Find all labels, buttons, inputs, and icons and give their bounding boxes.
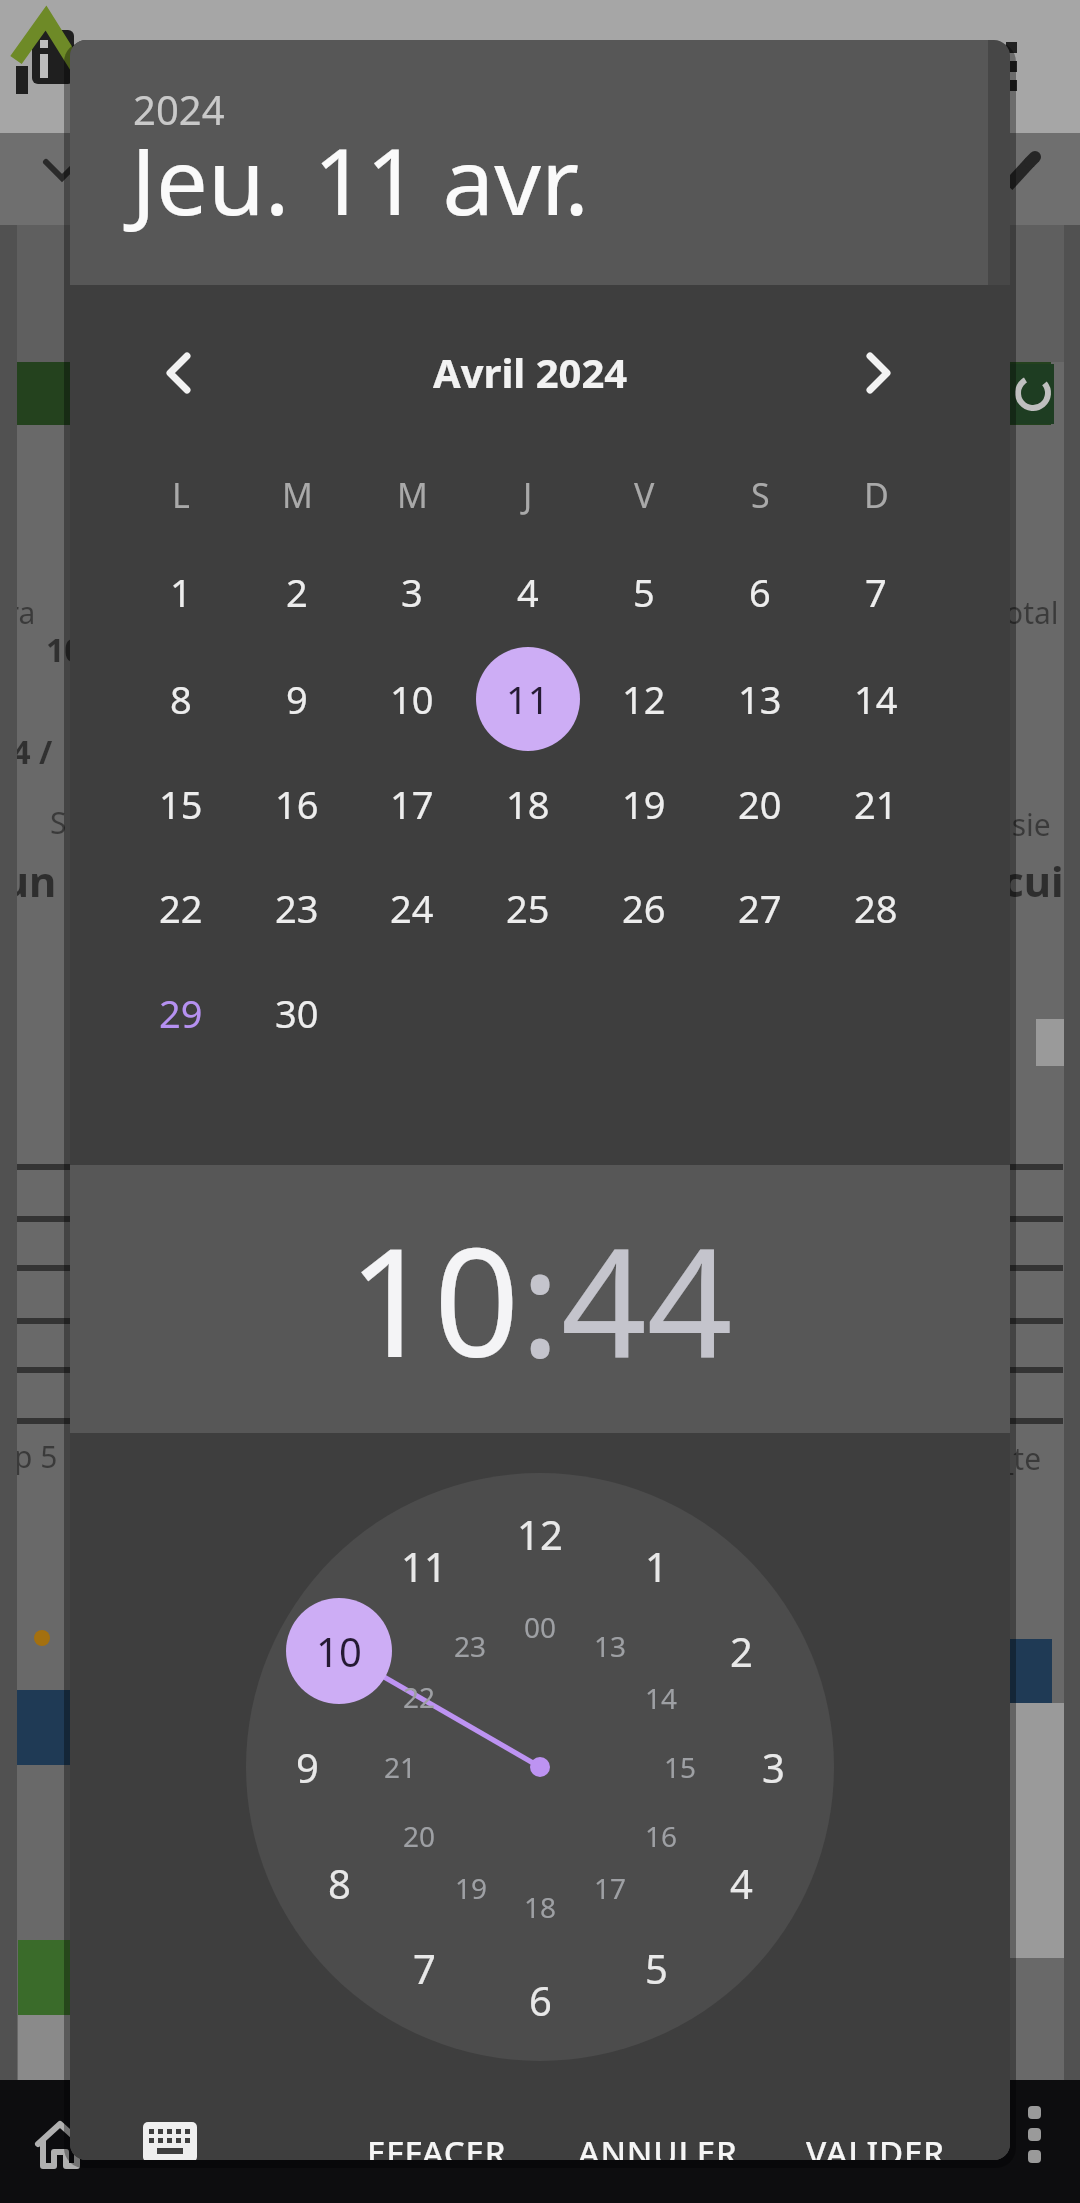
button[interactable]: VALIDER (745, 2117, 1005, 2160)
button[interactable]: 30 (247, 963, 347, 1063)
button[interactable]: 6 (495, 1955, 585, 2045)
button[interactable]: 15 (645, 1737, 715, 1797)
staticText: 4 (730, 1856, 753, 1910)
button[interactable]: 18 (478, 754, 578, 854)
button[interactable]: 12 (594, 649, 694, 749)
button[interactable]: 8 (294, 1838, 384, 1928)
button[interactable]: 21 (826, 754, 926, 854)
button[interactable]: 17 (362, 754, 462, 854)
button[interactable]: 22 (384, 1667, 454, 1727)
staticText: 00 (524, 1608, 557, 1646)
button[interactable]: 19 (436, 1858, 506, 1918)
button[interactable]: 13 (710, 649, 810, 749)
button[interactable]: 22 (131, 858, 231, 958)
button[interactable]: 7 (826, 542, 926, 642)
button[interactable]: 16 (626, 1806, 696, 1866)
button[interactable]: 21 (365, 1737, 435, 1797)
button[interactable]: 20 (710, 754, 810, 854)
button[interactable]: 23 (247, 858, 347, 958)
staticText: 9 (286, 673, 308, 725)
button[interactable] (143, 2122, 197, 2160)
button[interactable]: 11 (379, 1521, 469, 1611)
staticText: 19 (455, 1869, 488, 1907)
staticText: 1 (645, 1539, 668, 1593)
staticText: cui (1002, 852, 1064, 909)
staticText: 11 (506, 673, 550, 725)
button[interactable]: 24 (362, 858, 462, 958)
button[interactable]: EFFACER (307, 2117, 567, 2160)
staticText: otal (1005, 592, 1059, 633)
staticText: 6 (749, 566, 771, 618)
staticText: S (751, 472, 770, 518)
button[interactable] (831, 328, 921, 418)
button[interactable]: 18 (505, 1877, 575, 1937)
staticText: VALIDER (806, 2130, 945, 2160)
button[interactable]: 14 (826, 649, 926, 749)
button[interactable]: 19 (594, 754, 694, 854)
button[interactable]: 13 (575, 1616, 645, 1676)
button[interactable]: ANNULER (528, 2117, 788, 2160)
button[interactable]: 9 (247, 649, 347, 749)
staticText: Jeu. 11 avr. (131, 117, 589, 242)
staticText: 23 (275, 882, 319, 934)
staticText: M (282, 472, 313, 518)
staticText: 44 (561, 1197, 733, 1401)
button[interactable]: 27 (710, 858, 810, 958)
staticText: 16 (275, 778, 319, 830)
button[interactable]: 29 (131, 963, 231, 1063)
button[interactable]: 25 (478, 858, 578, 958)
button[interactable]: 20 (384, 1806, 454, 1866)
staticText: 23 (454, 1627, 487, 1665)
button[interactable]: 1 (131, 542, 231, 642)
button[interactable]: 15 (131, 754, 231, 854)
button[interactable]: 2 (696, 1606, 786, 1696)
button[interactable]: 14 (626, 1668, 696, 1728)
button[interactable] (136, 328, 226, 418)
button[interactable]: 17 (575, 1858, 645, 1918)
button[interactable]: 7 (379, 1923, 469, 2013)
staticText: M (397, 472, 428, 518)
button[interactable]: 4 (696, 1838, 786, 1928)
button[interactable]: 23 (435, 1616, 505, 1676)
staticText: 12 (622, 673, 666, 725)
button[interactable]: 10 (286, 1598, 392, 1704)
button[interactable]: 8 (131, 649, 231, 749)
button[interactable]: 6 (710, 542, 810, 642)
staticText: 18 (506, 778, 550, 830)
button[interactable]: 12 (495, 1489, 585, 1579)
staticText: 5 (633, 566, 655, 618)
button[interactable]: 5 (594, 542, 694, 642)
button[interactable]: 11 (476, 647, 580, 751)
staticText: 4 (517, 566, 539, 618)
button[interactable]: 3 (362, 542, 462, 642)
staticText: 3 (762, 1740, 785, 1794)
button[interactable]: 26 (594, 858, 694, 958)
staticText: 2 (730, 1624, 753, 1678)
button[interactable]: 28 (826, 858, 926, 958)
button[interactable]: 16 (247, 754, 347, 854)
button[interactable]: 2 (247, 542, 347, 642)
staticText: 5 (645, 1941, 668, 1995)
button[interactable]: 3 (728, 1722, 818, 1812)
staticText: 24 (390, 882, 434, 934)
staticText: 20 (403, 1817, 436, 1855)
button[interactable]: 5 (611, 1923, 701, 2013)
button[interactable]: 10 (362, 649, 462, 749)
button[interactable]: 1 (611, 1521, 701, 1611)
staticText: 16 (645, 1817, 678, 1855)
button[interactable]: 4 (478, 542, 578, 642)
staticText: 8 (328, 1856, 351, 1910)
button[interactable]: 00 (505, 1597, 575, 1657)
staticText: hora (0, 592, 36, 633)
button[interactable]: 9 (262, 1722, 352, 1812)
staticText: 21 (854, 778, 898, 830)
staticText: 10 (390, 673, 434, 725)
staticText: _te (1000, 1438, 1042, 1479)
staticText: 04 / (0, 730, 53, 774)
staticText: 13 (738, 673, 782, 725)
staticText: 15 (664, 1748, 697, 1786)
staticText: 27 (738, 882, 782, 934)
staticText: 12 (517, 1507, 563, 1561)
staticText: 6 (529, 1973, 552, 2027)
staticText: 25 (506, 882, 550, 934)
